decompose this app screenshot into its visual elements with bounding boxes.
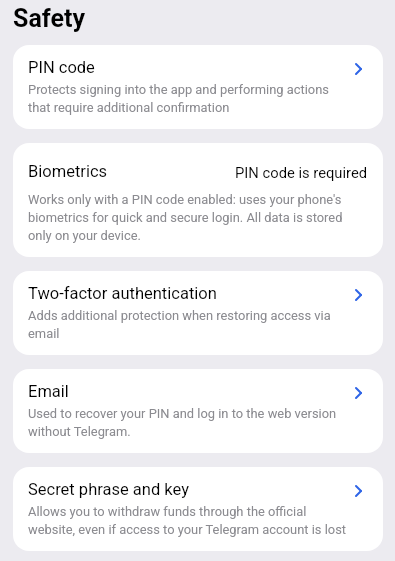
- button[interactable]: Two-factor authentication: [13, 271, 383, 355]
- staticText: PIN code is required: [235, 164, 368, 181]
- staticText: Safety: [13, 4, 85, 33]
- other: Open Email: [349, 385, 368, 401]
- staticText: Biometrics: [28, 162, 108, 181]
- other: Open Two-factor authentication: [349, 287, 368, 303]
- staticText: Protects signing into the app and perfor…: [28, 82, 348, 115]
- staticText: Adds additional protection when restorin…: [28, 308, 348, 341]
- staticText: Allows you to withdraw funds through the…: [28, 504, 348, 537]
- staticText: Works only with a PIN code enabled: uses…: [28, 192, 348, 243]
- staticText: Two-factor authentication: [28, 284, 217, 303]
- button[interactable]: Biometrics: [13, 143, 383, 257]
- other: Open Secret phrase and key: [349, 483, 368, 499]
- button[interactable]: PIN code: [13, 45, 383, 129]
- staticText: Email: [28, 382, 69, 401]
- staticText: Used to recover your PIN and log in to t…: [28, 406, 348, 439]
- other: Open PIN code: [349, 61, 368, 77]
- staticText: PIN code: [28, 58, 95, 77]
- button[interactable]: Email: [13, 369, 383, 453]
- staticText: Secret phrase and key: [28, 480, 189, 499]
- button[interactable]: Secret phrase and key: [13, 467, 383, 551]
